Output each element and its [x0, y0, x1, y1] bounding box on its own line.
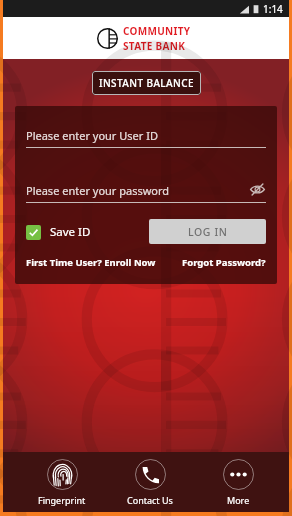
staticText: 1:14: [263, 2, 283, 16]
staticText: Fingerprint: [38, 494, 86, 506]
button[interactable]: Please enter your User ID: [26, 128, 266, 148]
button[interactable]: Show password: [248, 180, 266, 198]
staticText: COMMUNITY: [123, 24, 191, 38]
staticText: Save ID: [50, 224, 91, 240]
button[interactable]: Forgot Password?: [182, 256, 266, 269]
staticText: LOG IN: [188, 225, 228, 239]
button[interactable]: LOG IN: [149, 219, 266, 244]
button[interactable]: Fingerprint: [38, 456, 86, 509]
button[interactable]: Save ID: [26, 224, 91, 240]
staticText: INSTANT BALANCE: [99, 76, 194, 90]
staticText: More: [227, 494, 250, 506]
button[interactable]: More: [223, 456, 254, 509]
staticText: STATE BANK: [123, 39, 186, 53]
staticText: Contact Us: [127, 494, 173, 506]
staticText: Please enter your User ID: [26, 128, 158, 143]
button[interactable]: Contact Us: [127, 456, 173, 509]
button[interactable]: First Time User? Enroll Now: [26, 256, 156, 269]
staticText: Please enter your password: [26, 183, 170, 198]
button[interactable]: Please enter your password: [26, 183, 266, 203]
button[interactable]: INSTANT BALANCE: [92, 71, 201, 95]
